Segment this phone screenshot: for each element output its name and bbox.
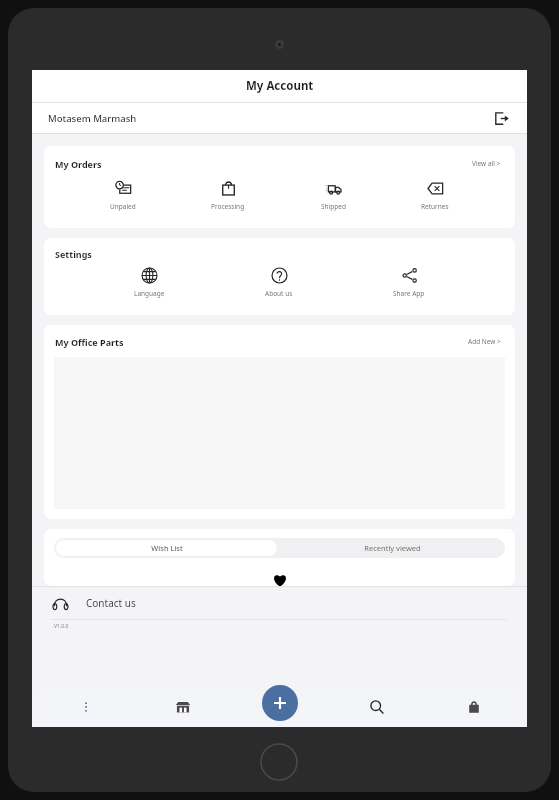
button[interactable]: Processing xyxy=(201,177,255,214)
button[interactable]: Log out xyxy=(491,108,511,128)
staticText: My Orders xyxy=(55,158,102,170)
staticText: Wish List xyxy=(151,543,183,553)
button[interactable]: About us xyxy=(255,264,303,301)
staticText: Share App xyxy=(393,289,425,298)
button[interactable]: Contact us xyxy=(32,587,527,619)
button[interactable]: Wish List xyxy=(56,540,277,556)
button[interactable]: Shipped xyxy=(311,177,356,214)
button[interactable]: Search xyxy=(328,687,425,727)
staticText: My Office Parts xyxy=(55,336,124,348)
staticText: Add New > xyxy=(468,337,501,346)
button[interactable]: More xyxy=(37,687,134,727)
staticText: Unpaied xyxy=(110,202,136,211)
button[interactable]: Motasem Marmash xyxy=(32,103,527,133)
button[interactable]: Returnes xyxy=(411,177,459,214)
staticText: My Account xyxy=(246,78,314,94)
button[interactable]: Share App xyxy=(383,264,435,301)
button[interactable]: Language xyxy=(124,264,175,301)
button[interactable]: View all > xyxy=(469,156,504,171)
button[interactable]: Add New > xyxy=(465,334,504,349)
button[interactable]: Unpaied xyxy=(100,177,146,214)
staticText: Contact us xyxy=(86,596,136,610)
staticText: Shipped xyxy=(321,202,346,211)
staticText: V1.0.0 xyxy=(54,623,69,630)
button[interactable]: Cart xyxy=(425,687,522,727)
staticText: Recently viewed xyxy=(364,543,421,553)
staticText: View all > xyxy=(472,159,501,168)
staticText: Returnes xyxy=(421,202,449,211)
staticText: Settings xyxy=(55,248,92,260)
staticText: About us xyxy=(265,289,293,298)
staticText: Motasem Marmash xyxy=(48,112,137,125)
button[interactable]: Store xyxy=(134,687,231,727)
button[interactable]: Recently viewed xyxy=(279,538,505,558)
staticText: Processing xyxy=(211,202,245,211)
button[interactable]: Add xyxy=(262,685,298,721)
staticText: Language xyxy=(134,289,165,298)
